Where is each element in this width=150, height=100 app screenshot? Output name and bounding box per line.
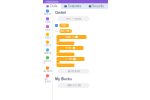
button[interactable]: define block xyxy=(58,69,89,74)
button[interactable]: Sounds xyxy=(84,4,108,9)
button[interactable]: repeat 10 xyxy=(56,35,86,45)
button[interactable]: forever xyxy=(56,46,83,56)
button[interactable]: Scratch menu xyxy=(43,0,108,4)
staticText: Code xyxy=(50,5,58,8)
button[interactable]: Motion xyxy=(43,9,52,16)
button[interactable]: Events xyxy=(43,33,52,39)
button[interactable]: Code xyxy=(43,4,61,9)
staticText: define block xyxy=(67,70,79,73)
staticText: forever xyxy=(65,47,72,49)
button[interactable]: My Blocks xyxy=(43,74,52,83)
button[interactable]: wait 1 seconds xyxy=(58,16,89,21)
button[interactable]: Costumes xyxy=(61,4,84,9)
staticText: Sensing xyxy=(44,52,51,54)
button[interactable]: Sensing xyxy=(43,48,52,54)
staticText: Costumes xyxy=(68,5,81,8)
staticText: My Blocks xyxy=(55,77,72,81)
staticText: if then xyxy=(65,58,72,60)
button[interactable]: Control xyxy=(43,40,52,47)
staticText: Motion xyxy=(44,13,51,16)
button[interactable]: wait until xyxy=(55,29,72,33)
button[interactable]: Variables xyxy=(43,66,52,73)
staticText: Looks xyxy=(45,21,50,23)
staticText: Control xyxy=(55,10,66,14)
staticText: Variables xyxy=(43,70,52,73)
button[interactable]: Operators xyxy=(43,56,52,65)
staticText: Operators xyxy=(43,60,52,65)
staticText: Control xyxy=(43,44,51,47)
staticText: wait 1 seconds xyxy=(66,17,81,20)
staticText: My Blocks xyxy=(44,78,50,83)
button[interactable]: Sound xyxy=(43,25,52,31)
staticText: wait xyxy=(62,24,67,27)
staticText: Sound xyxy=(45,29,50,31)
staticText: Make a Block xyxy=(66,84,80,87)
button[interactable]: Make a Block xyxy=(58,83,89,88)
button[interactable]: wait xyxy=(55,24,69,27)
staticText: Events xyxy=(44,36,50,39)
staticText: repeat 10 xyxy=(65,36,74,38)
button[interactable]: Looks xyxy=(43,17,52,23)
staticText: wait until xyxy=(60,30,71,32)
staticText: Sounds xyxy=(92,5,103,8)
button[interactable]: if then xyxy=(56,57,84,67)
